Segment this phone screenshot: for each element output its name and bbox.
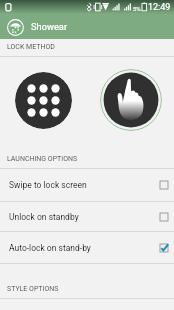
button[interactable]: Touch lock method: [100, 69, 162, 131]
button[interactable]: Auto-lock on stand-by: [0, 232, 174, 263]
staticText: Auto-lock on stand-by: [9, 243, 91, 253]
button[interactable]: Swipe to lock screen: [0, 169, 174, 201]
staticText: Swipe to lock screen: [9, 180, 87, 190]
staticText: 5%: [133, 5, 141, 12]
button[interactable]: PIN lock method: [15, 72, 72, 129]
staticText: LOCK METHOD: [7, 43, 55, 51]
staticText: 12:49: [148, 2, 171, 13]
staticText: Showear: [31, 21, 68, 32]
staticText: LAUNCHING OPTIONS: [7, 155, 78, 163]
staticText: STYLE OPTIONS: [7, 285, 59, 293]
staticText: Unlock on standby: [9, 212, 79, 222]
button[interactable]: Unlock on standby: [0, 202, 174, 231]
button[interactable]: Showear: [5, 17, 25, 37]
